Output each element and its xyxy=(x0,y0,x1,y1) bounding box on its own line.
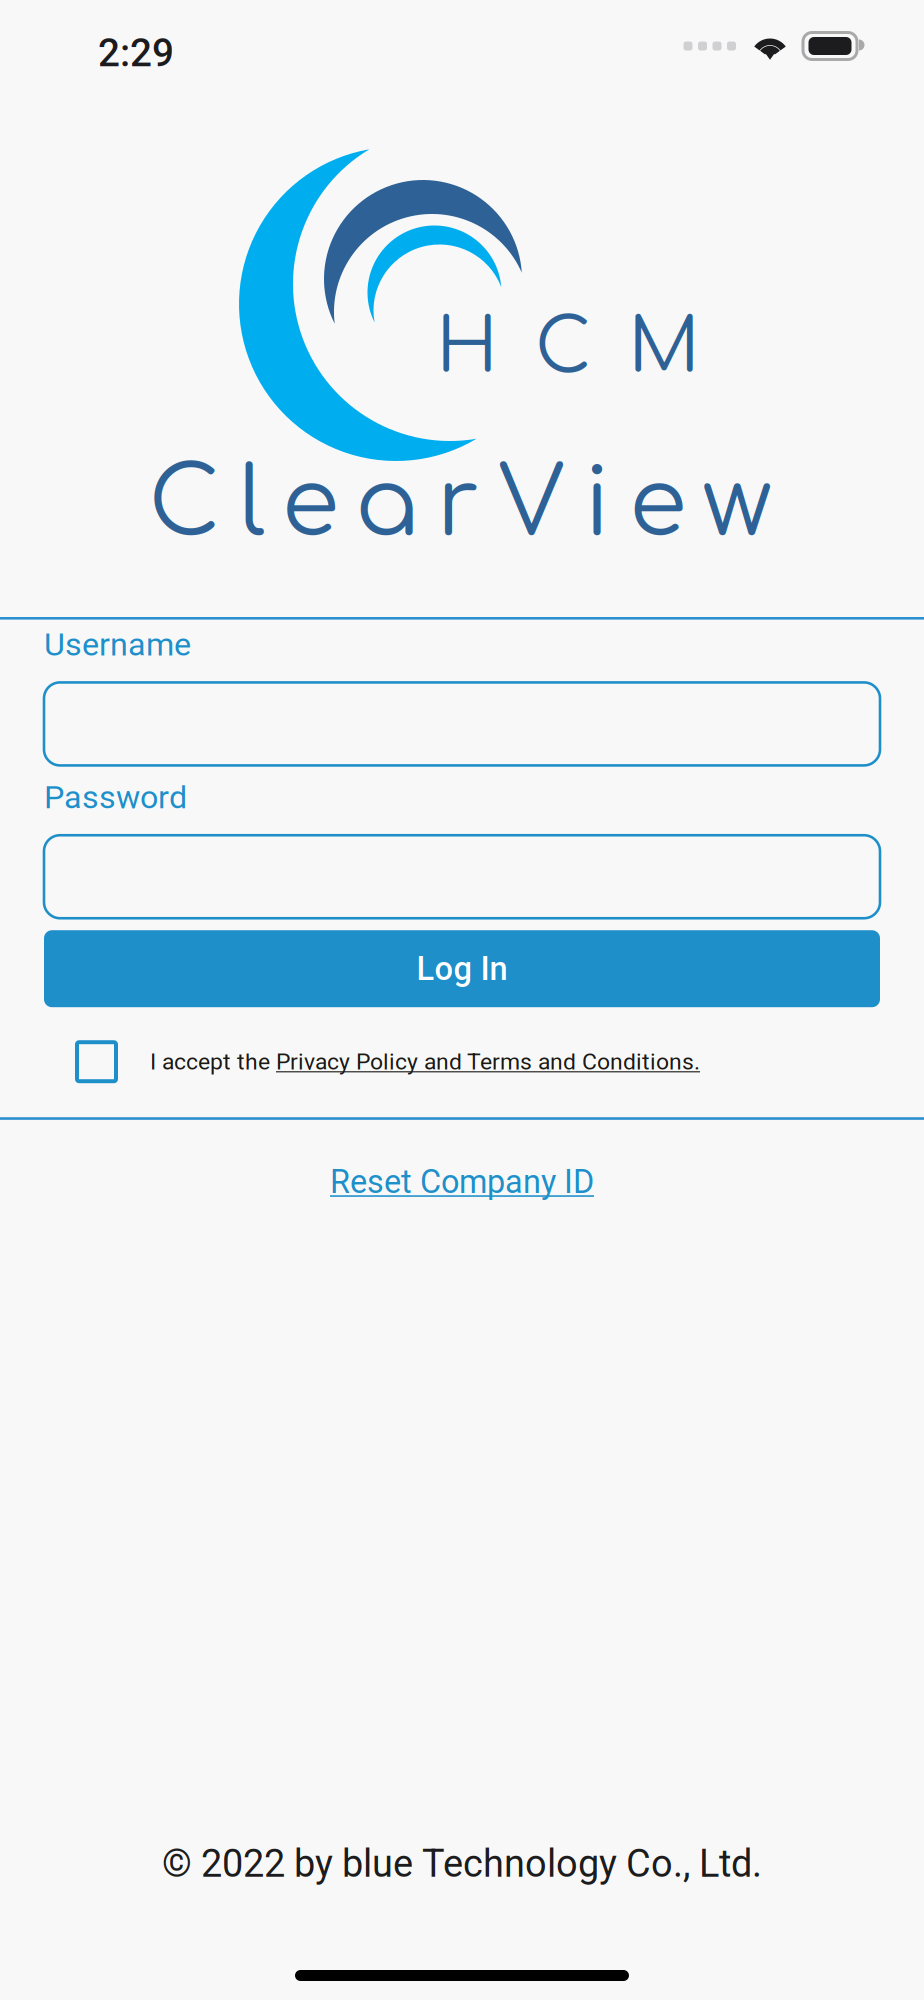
staticText: 2:29 xyxy=(98,30,174,76)
staticText: Username xyxy=(44,626,191,663)
staticText: Password xyxy=(44,778,187,816)
staticText: Reset Company ID xyxy=(330,1163,594,1201)
staticText: I accept the Privacy Policy and Terms an… xyxy=(150,1049,700,1075)
staticText: © 2022 by blue Technology Co., Ltd. xyxy=(162,1842,762,1886)
button[interactable]: Reset Company ID xyxy=(0,1163,924,1201)
staticText: HCM xyxy=(436,307,700,389)
button[interactable]: I accept the Privacy Policy and Terms an… xyxy=(44,1042,880,1081)
button[interactable]: Log In xyxy=(44,930,880,1007)
staticText: Log In xyxy=(416,950,507,988)
staticText: ClearView xyxy=(148,453,771,557)
